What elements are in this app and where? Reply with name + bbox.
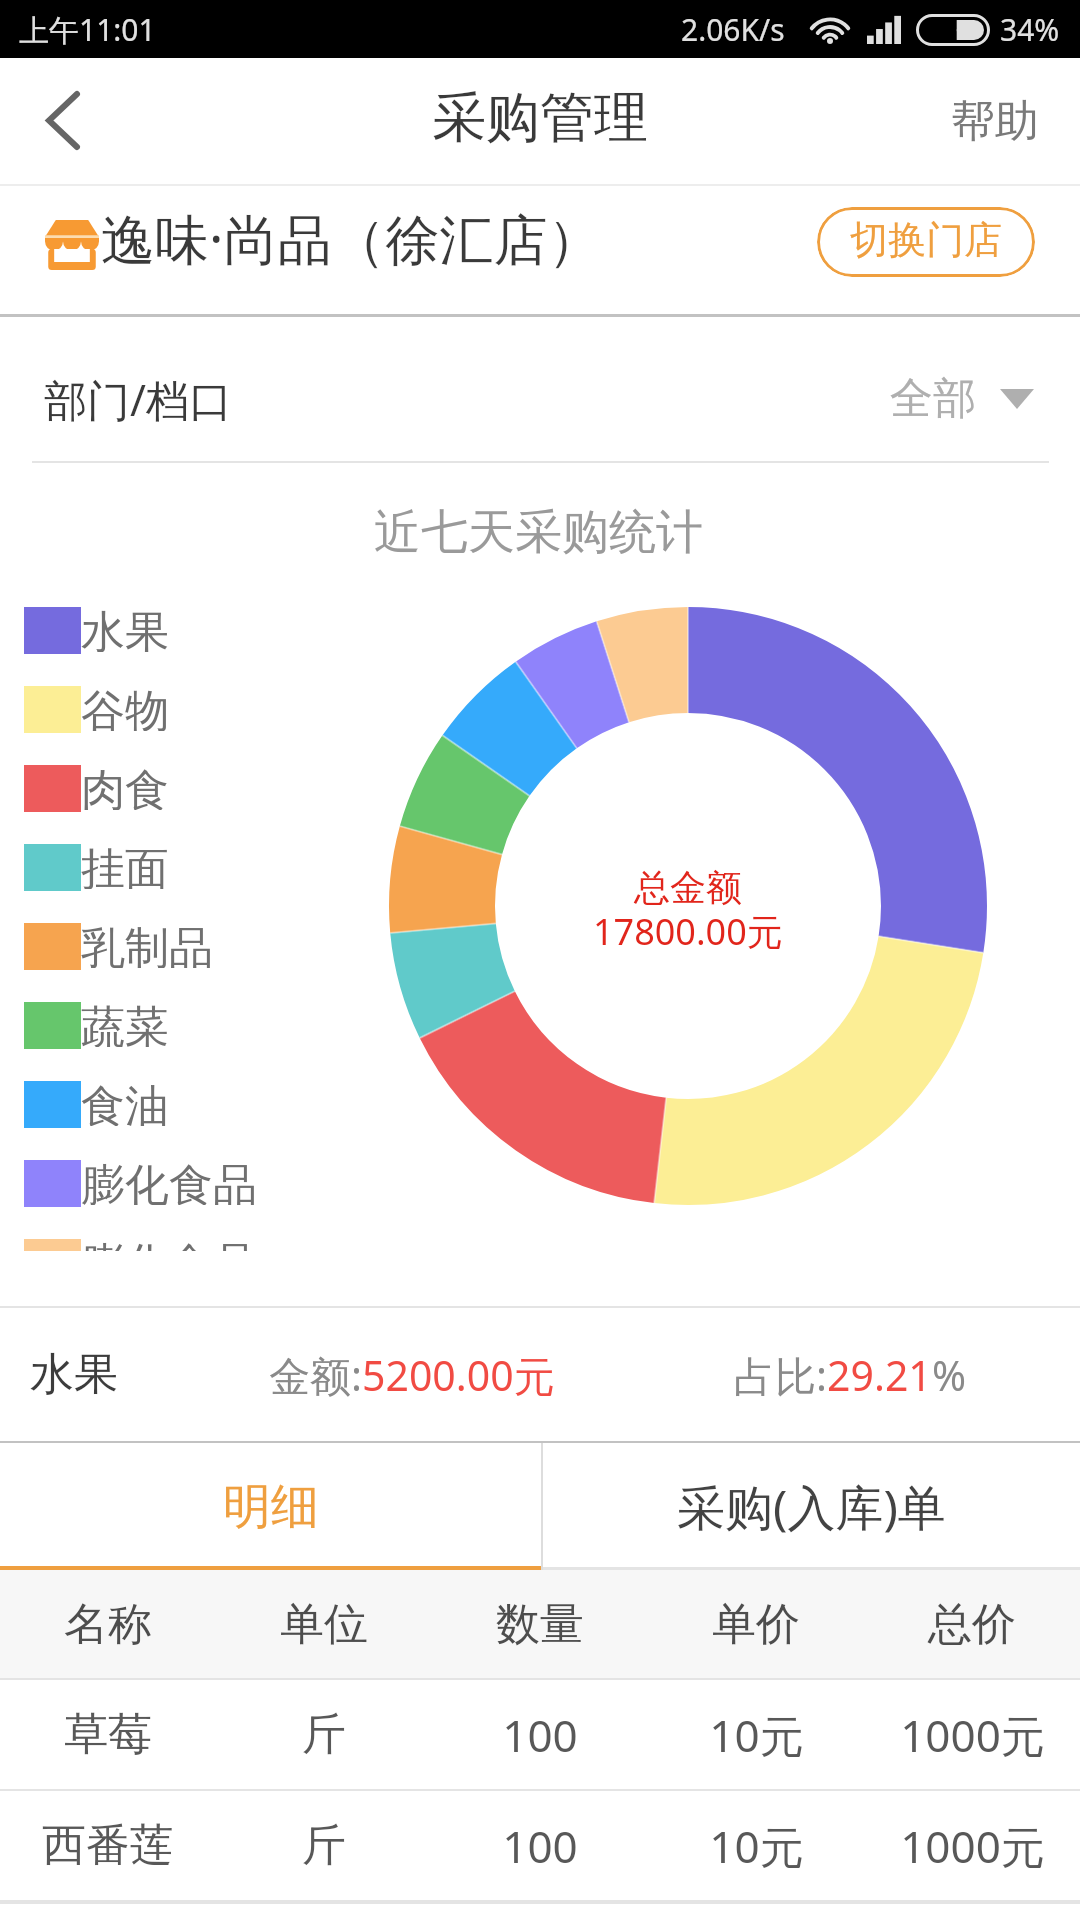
staticText: 10元 [709, 1816, 804, 1876]
staticText: 全部 [890, 372, 976, 426]
staticText: 1000元 [900, 1705, 1045, 1765]
staticText: 食油 [81, 1079, 169, 1126]
staticText: 肉食 [81, 763, 169, 810]
staticText: 水果 [30, 1347, 118, 1402]
staticText: 逸味·尚品（徐汇店） [101, 201, 602, 275]
staticText: 10元 [709, 1705, 804, 1765]
button[interactable]: Back [0, 58, 126, 184]
button[interactable]: 明细 [0, 1443, 541, 1570]
staticText: 部门/档口 [44, 370, 232, 429]
staticText: 采购管理 [432, 84, 648, 152]
staticText: 1000元 [900, 1816, 1045, 1876]
staticText: 谷物 [81, 684, 169, 731]
button[interactable]: 切换门店 [817, 207, 1035, 277]
button[interactable]: 草莓 [0, 1680, 1080, 1789]
staticText: % [932, 1347, 967, 1403]
staticText: 上午11:01 [19, 9, 156, 50]
staticText: 斤 [302, 1818, 346, 1873]
button[interactable]: 帮助 [910, 58, 1080, 184]
staticText: 29.21 [827, 1347, 932, 1403]
staticText: 帮助 [951, 94, 1039, 149]
staticText: 乳制品 [81, 921, 213, 968]
staticText: 挂面 [81, 842, 169, 889]
staticText: 100 [502, 1816, 578, 1876]
staticText: 单价 [712, 1597, 800, 1652]
staticText: 斤 [302, 1707, 346, 1762]
staticText: 数量 [496, 1597, 584, 1652]
staticText: 5200.00元 [362, 1347, 555, 1403]
staticText: 总价 [928, 1597, 1016, 1652]
staticText: 膨化食品 [81, 1237, 257, 1251]
staticText: 34% [1000, 9, 1060, 50]
button[interactable]: 全部 [890, 372, 1034, 426]
staticText: 明细 [223, 1477, 319, 1537]
staticText: 草莓 [64, 1707, 152, 1762]
button[interactable]: 采购(入库)单 [543, 1443, 1080, 1570]
staticText: 100 [502, 1705, 578, 1765]
staticText: 17800.00元 [593, 907, 783, 956]
staticText: 2.06K/s [681, 9, 785, 50]
staticText: 蔬菜 [81, 1000, 169, 1047]
staticText: 近七天采购统计 [374, 503, 703, 562]
staticText: 膨化食品 [81, 1158, 257, 1205]
staticText: 金额: [269, 1347, 362, 1403]
staticText: 名称 [64, 1597, 152, 1652]
staticText: 水果 [81, 605, 169, 652]
staticText: 占比: [734, 1347, 827, 1403]
staticText: 采购(入库)单 [677, 1474, 946, 1540]
staticText: 总金额 [634, 865, 742, 910]
staticText: 单位 [280, 1597, 368, 1652]
staticText: 切换门店 [850, 216, 1002, 264]
button[interactable]: 西番莲 [0, 1791, 1080, 1900]
button[interactable]: 部门/档口 [0, 317, 1080, 463]
staticText: 西番莲 [42, 1818, 174, 1873]
